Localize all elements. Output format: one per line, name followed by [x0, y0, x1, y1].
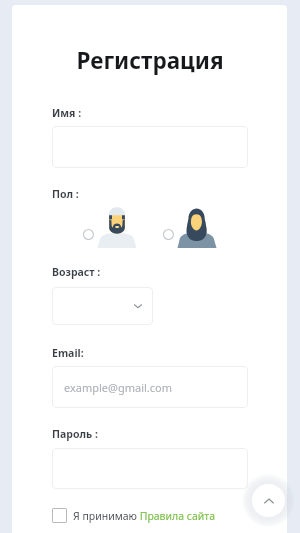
button[interactable]: Scroll to top: [252, 484, 285, 517]
staticText: Я принимаю Правила сайта: [73, 509, 216, 523]
button[interactable]: [52, 287, 153, 325]
button[interactable]: [52, 126, 248, 168]
button[interactable]: example@gmail.com: [52, 366, 248, 408]
staticText: Возраст :: [52, 265, 101, 279]
button[interactable]: [163, 207, 217, 248]
staticText: Пол :: [52, 187, 79, 201]
button[interactable]: [83, 207, 137, 248]
button[interactable]: Я принимаю Правила сайта: [52, 508, 216, 523]
staticText: Email:: [52, 346, 84, 360]
staticText: example@gmail.com: [64, 380, 173, 395]
staticText: Имя :: [52, 106, 82, 120]
staticText: Пароль :: [52, 427, 98, 441]
button[interactable]: [52, 448, 248, 489]
staticText: Регистрация: [0, 45, 300, 76]
